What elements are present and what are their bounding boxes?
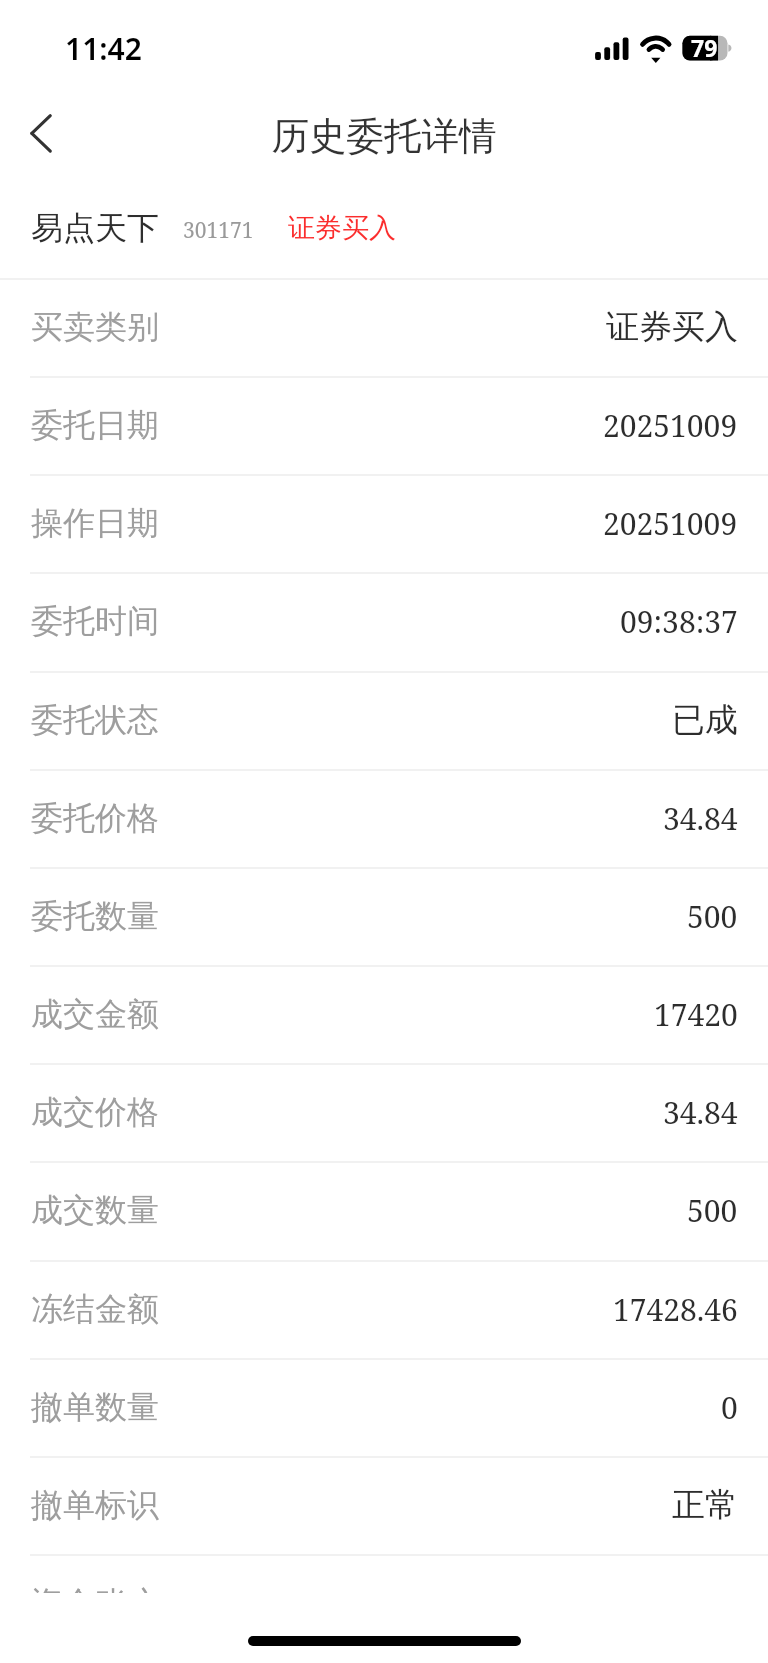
button[interactable]: 撤单数量 <box>0 1358 768 1456</box>
other: Home indicator <box>248 1636 521 1646</box>
staticText: 委托状态 <box>31 700 159 740</box>
staticText: 79 <box>691 32 718 63</box>
button[interactable]: 委托数量 <box>0 867 768 965</box>
staticText: 委托价格 <box>31 798 159 838</box>
staticText: 委托日期 <box>31 405 159 445</box>
staticText: 0 <box>721 1387 738 1428</box>
button[interactable]: 委托时间 <box>0 572 768 670</box>
staticText: 20251009 <box>603 405 738 446</box>
button[interactable]: 买卖类别 <box>0 278 768 376</box>
button[interactable]: Back <box>8 95 68 171</box>
button[interactable]: 冻结金额 <box>0 1260 768 1358</box>
button[interactable]: 委托价格 <box>0 769 768 867</box>
staticText: 撤单标识 <box>31 1485 159 1525</box>
staticText: 委托时间 <box>31 601 159 641</box>
button[interactable]: 操作日期 <box>0 474 768 572</box>
staticText: 操作日期 <box>31 503 159 543</box>
staticText: 500 <box>687 1190 738 1231</box>
staticText: 500 <box>687 896 738 937</box>
staticText: 正常 <box>672 1484 738 1526</box>
staticText: 09:38:37 <box>620 601 738 642</box>
staticText: 已成 <box>672 699 738 741</box>
staticText: 证券买入 <box>606 306 738 348</box>
staticText: 成交价格 <box>31 1092 159 1132</box>
button[interactable]: 易点天下 <box>0 196 768 260</box>
staticText: 历史委托详情 <box>0 113 768 160</box>
staticText: 委托数量 <box>31 896 159 936</box>
staticText: 34.84 <box>663 1092 738 1133</box>
staticText: 买卖类别 <box>31 307 159 347</box>
staticText: 证券买入 <box>288 211 396 245</box>
staticText: 撤单数量 <box>31 1387 159 1427</box>
staticText: 34.84 <box>663 798 738 839</box>
button[interactable]: 成交数量 <box>0 1161 768 1259</box>
staticText: 成交数量 <box>31 1190 159 1230</box>
staticText: 301171 <box>183 216 254 245</box>
staticText: 17420 <box>654 994 738 1035</box>
button[interactable]: 委托状态 <box>0 671 768 769</box>
button[interactable]: 委托日期 <box>0 376 768 474</box>
button[interactable]: 成交金额 <box>0 965 768 1063</box>
staticText: 11:42 <box>65 28 142 69</box>
staticText: 易点天下 <box>31 208 159 248</box>
staticText: 20251009 <box>603 503 738 544</box>
staticText: 资金账户 <box>31 1583 159 1623</box>
staticText: 成交金额 <box>31 994 159 1034</box>
staticText: 17428.46 <box>613 1289 738 1330</box>
button[interactable]: 撤单标识 <box>0 1456 768 1554</box>
button[interactable]: 成交价格 <box>0 1063 768 1161</box>
staticText: 冻结金额 <box>31 1289 159 1329</box>
button[interactable]: 资金账户 <box>0 1554 768 1652</box>
